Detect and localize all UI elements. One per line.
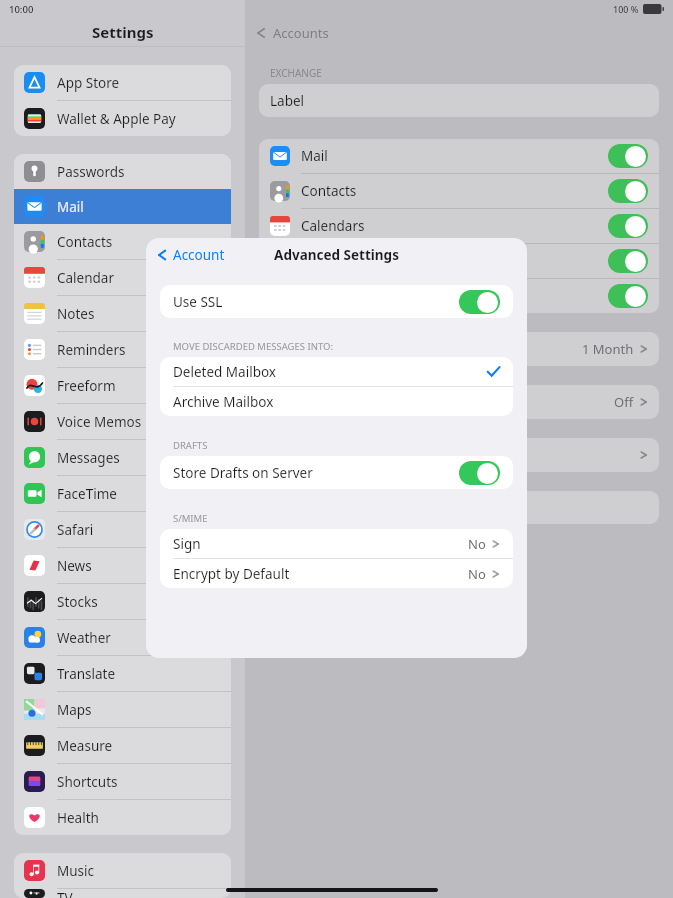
staticText: Store Drafts on Server <box>173 464 313 482</box>
button[interactable]: Notes <box>14 296 231 331</box>
staticText: Deleted Mailbox <box>173 363 276 381</box>
button[interactable]: Encrypt by Default <box>160 559 513 588</box>
staticText: 10:00 <box>9 3 34 16</box>
staticText: 1 Month <box>582 340 634 358</box>
staticText: Calendar <box>57 269 114 287</box>
button[interactable] <box>259 491 659 524</box>
staticText: Settings <box>92 22 154 42</box>
button[interactable]: TV <box>14 889 231 898</box>
button[interactable]: Weather <box>14 620 231 655</box>
staticText: Mail Folders to Push <box>270 393 399 411</box>
staticText: DRAFTS <box>173 439 208 452</box>
staticText: No <box>468 535 486 553</box>
staticText: Mail Days to Sync <box>270 340 381 358</box>
button[interactable]: Reminders <box>14 332 231 367</box>
staticText: Encrypt by Default <box>173 565 290 583</box>
button[interactable]: Calendars <box>259 209 659 243</box>
button[interactable]: Contacts <box>14 224 231 259</box>
button[interactable]: Archive Mailbox <box>160 387 513 416</box>
staticText: Translate <box>57 665 116 683</box>
button[interactable]: Toggle <box>459 461 500 485</box>
button[interactable]: Contacts <box>259 174 659 208</box>
button[interactable]: Freeform <box>14 368 231 403</box>
staticText: Measure <box>57 737 113 755</box>
button[interactable]: Messages <box>14 440 231 475</box>
staticText: Label <box>270 92 305 110</box>
button[interactable]: Mail <box>14 189 231 224</box>
staticText: Safari <box>57 521 94 539</box>
staticText: Freeform <box>57 377 116 395</box>
staticText: Messages <box>57 449 120 467</box>
button[interactable]: FaceTime <box>14 476 231 511</box>
button[interactable]: Calendar <box>14 260 231 295</box>
staticText: TV <box>57 889 73 898</box>
staticText: Use SSL <box>173 293 223 311</box>
staticText: Music <box>57 862 95 880</box>
staticText: Account <box>173 246 225 264</box>
staticText: MOVE DISCARDED MESSAGES INTO: <box>173 340 333 353</box>
button[interactable]: Wallet & Apple Pay <box>14 101 231 136</box>
staticText: Wallet & Apple Pay <box>57 110 176 128</box>
staticText: Mail <box>57 198 84 216</box>
button[interactable]: Mail <box>259 139 659 173</box>
staticText: Reminders <box>301 252 370 270</box>
staticText: App Store <box>57 74 120 92</box>
staticText: EXCHANGE <box>270 66 322 80</box>
staticText: Contacts <box>57 233 113 251</box>
staticText: Weather <box>57 629 111 647</box>
button[interactable]: Maps <box>14 692 231 727</box>
staticText: Maps <box>57 701 92 719</box>
button[interactable]: Translate <box>14 656 231 691</box>
staticText: Off <box>614 393 634 411</box>
button[interactable]: Use SSL <box>160 285 513 318</box>
button[interactable]: Toggle <box>608 144 648 168</box>
staticText: Notes <box>57 305 95 323</box>
button[interactable]: Accounts <box>245 18 673 48</box>
button[interactable]: Sign <box>160 529 513 558</box>
button[interactable]: Advanced Settings <box>259 438 659 472</box>
staticText: Shortcuts <box>57 773 118 791</box>
button[interactable]: Shortcuts <box>14 764 231 799</box>
staticText: FaceTime <box>57 485 117 503</box>
staticText: Advanced Settings <box>270 446 387 464</box>
button[interactable]: Music <box>14 853 231 888</box>
button[interactable]: Stocks <box>14 584 231 619</box>
button[interactable]: Safari <box>14 512 231 547</box>
button[interactable]: News <box>14 548 231 583</box>
button[interactable]: App Store <box>14 65 231 100</box>
staticText: Accounts <box>273 24 329 42</box>
button[interactable]: Toggle <box>608 284 648 308</box>
button[interactable]: Measure <box>14 728 231 763</box>
staticText: Sign <box>173 535 201 553</box>
staticText: Stocks <box>57 593 98 611</box>
button[interactable]: Voice Memos <box>14 404 231 439</box>
button[interactable]: Toggle <box>459 290 500 314</box>
staticText: News <box>57 557 92 575</box>
staticText: Mail <box>301 147 328 165</box>
staticText: No <box>468 565 486 583</box>
staticText: Voice Memos <box>57 413 142 431</box>
staticText: Contacts <box>301 182 357 200</box>
staticText: Advanced Settings <box>274 246 399 264</box>
staticText: Health <box>57 809 99 827</box>
button[interactable]: Deleted Mailbox <box>160 357 513 386</box>
button[interactable]: Toggle <box>608 249 648 273</box>
button[interactable]: Account <box>146 242 233 268</box>
button[interactable]: Toggle <box>608 179 648 203</box>
button[interactable]: Label <box>259 84 659 117</box>
button[interactable]: Mail Folders to Push <box>259 385 659 419</box>
button[interactable]: Store Drafts on Server <box>160 456 513 489</box>
staticText: S/MIME <box>173 512 208 525</box>
button[interactable]: Toggle <box>608 214 648 238</box>
staticText: Calendars <box>301 217 365 235</box>
button[interactable]: Reminders <box>259 244 659 278</box>
button[interactable]: Notes <box>259 279 659 313</box>
staticText: 100 % <box>613 3 639 15</box>
button[interactable]: Passwords <box>14 154 231 189</box>
button[interactable]: Health <box>14 800 231 835</box>
staticText: Reminders <box>57 341 126 359</box>
staticText: Archive Mailbox <box>173 393 274 411</box>
staticText: Passwords <box>57 163 125 181</box>
button[interactable]: Mail Days to Sync <box>259 332 659 366</box>
